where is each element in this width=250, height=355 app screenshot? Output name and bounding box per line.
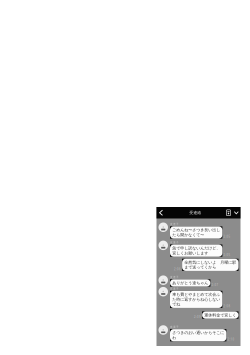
staticText: 全然気にしないよ 月曜に駅 bbox=[184, 260, 236, 265]
button[interactable]: More bbox=[232, 207, 240, 218]
staticText: たら聞かなくて〜 bbox=[172, 232, 204, 237]
staticText: でね bbox=[172, 302, 180, 307]
staticText: さつきのおい通いからそこに bbox=[172, 330, 224, 335]
staticText: 宜しくお願いします bbox=[172, 251, 208, 255]
staticText: 友達子 bbox=[170, 325, 179, 328]
button[interactable]: Albums bbox=[225, 207, 232, 218]
staticText: 急で申し訳ないんだけど、 bbox=[172, 246, 220, 251]
staticText: ありがとう達ちゃん bbox=[172, 280, 208, 285]
staticText: 2:08 bbox=[224, 304, 231, 308]
staticText: 友達子 bbox=[170, 275, 179, 279]
staticText: ごめんね〜さつき良い出し bbox=[172, 228, 220, 232]
staticText: まで送ってくから bbox=[184, 265, 216, 270]
staticText: 2:07 bbox=[212, 283, 219, 287]
staticText: 2:09 bbox=[194, 315, 201, 319]
button[interactable]: Back bbox=[156, 207, 166, 218]
staticText: 2:05 bbox=[224, 253, 231, 257]
staticText: 友達子 bbox=[170, 241, 179, 244]
staticText: 2:10 bbox=[228, 338, 235, 341]
staticText: 友達子 bbox=[170, 222, 179, 226]
staticText: 受連絡 bbox=[189, 210, 201, 215]
staticText: 車も費とやまとめて次会ふ bbox=[172, 292, 220, 297]
staticText: 友達子 bbox=[170, 287, 179, 290]
staticText: 2:05 bbox=[224, 235, 231, 239]
staticText: 2:06 bbox=[174, 267, 181, 271]
staticText: 運休料金で宜しく bbox=[204, 313, 236, 317]
staticText: わ bbox=[172, 335, 176, 340]
staticText: た時に返すからね心しない bbox=[172, 297, 220, 302]
